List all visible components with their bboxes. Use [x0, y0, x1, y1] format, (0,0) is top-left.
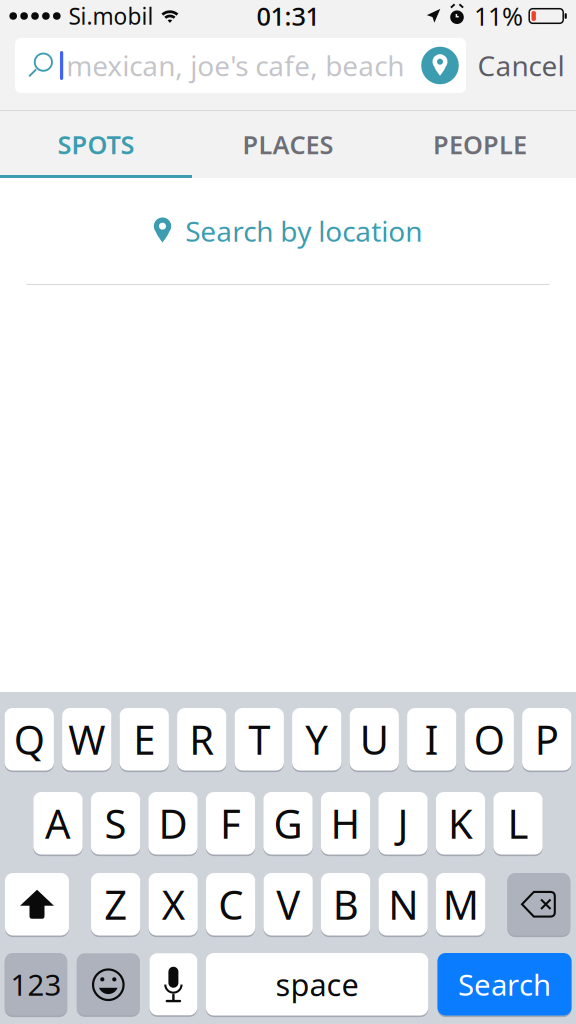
button[interactable]: R [177, 708, 226, 770]
staticText: V [276, 878, 300, 931]
staticText: mexican, joe's cafe, beach [66, 47, 404, 84]
staticText: 11% [474, 0, 523, 33]
button[interactable]: P [522, 708, 571, 770]
button[interactable]: PLACES [192, 111, 384, 178]
button[interactable]: Q [5, 708, 54, 770]
button[interactable]: U [350, 708, 399, 770]
button[interactable]: SPOTS [0, 111, 192, 178]
staticText: 01:31 [256, 0, 319, 33]
button[interactable]: Search nearby [414, 38, 466, 93]
button[interactable]: T [235, 708, 284, 770]
staticText: N [388, 878, 418, 931]
staticText: X [162, 878, 185, 931]
button[interactable]: A [33, 792, 83, 854]
staticText: I [425, 713, 439, 766]
button[interactable]: Cancel [466, 38, 576, 93]
staticText: C [218, 878, 243, 931]
button[interactable]: W [62, 708, 111, 770]
staticText: 123 [10, 965, 61, 1004]
button[interactable]: L [493, 792, 543, 854]
button[interactable]: C [206, 873, 255, 935]
staticText: J [397, 797, 408, 850]
staticText: B [333, 878, 359, 931]
staticText: Cancel [477, 47, 564, 84]
button[interactable]: G [263, 792, 313, 854]
staticText: F [220, 797, 241, 850]
staticText: M [443, 878, 479, 931]
button[interactable]: I [407, 708, 456, 770]
button[interactable]: F [206, 792, 255, 854]
staticText: Si.mobil [68, 1, 153, 31]
button[interactable]: S [91, 792, 140, 854]
button[interactable]: K [436, 792, 485, 854]
button[interactable]: X [148, 873, 198, 935]
button[interactable]: Emoji [77, 953, 140, 1015]
staticText: W [68, 713, 105, 766]
staticText: SPOTS [57, 128, 134, 161]
button[interactable]: Delete [507, 873, 570, 935]
button[interactable]: Y [292, 708, 341, 770]
button[interactable]: O [465, 708, 514, 770]
button[interactable]: V [263, 873, 313, 935]
button[interactable]: Search by location [0, 178, 576, 284]
staticText: A [45, 797, 71, 850]
staticText: P [535, 713, 559, 766]
staticText: Y [305, 713, 328, 766]
staticText: R [189, 713, 214, 766]
staticText: Q [14, 713, 45, 766]
staticText: PEOPLE [433, 128, 527, 161]
staticText: Search [458, 965, 551, 1004]
button[interactable]: Shift [5, 873, 69, 935]
staticText: space [276, 964, 359, 1005]
button[interactable]: Dictate [149, 953, 197, 1015]
button[interactable]: E [120, 708, 169, 770]
staticText: E [133, 713, 155, 766]
button[interactable]: M [436, 873, 485, 935]
staticText: Search by location [185, 212, 422, 250]
staticText: L [507, 797, 528, 850]
staticText: S [104, 797, 126, 850]
button[interactable]: Z [91, 873, 140, 935]
button[interactable]: 123 [5, 953, 67, 1015]
staticText: K [448, 797, 473, 850]
button[interactable]: H [321, 792, 370, 854]
button[interactable]: PEOPLE [384, 111, 576, 178]
button[interactable]: Search [437, 953, 571, 1015]
staticText: D [158, 797, 187, 850]
staticText: Z [104, 878, 127, 931]
staticText: G [273, 797, 302, 850]
staticText: PLACES [242, 128, 333, 161]
button[interactable]: D [148, 792, 198, 854]
staticText: T [248, 713, 270, 766]
button[interactable]: N [378, 873, 428, 935]
button[interactable]: J [378, 792, 428, 854]
staticText: H [330, 797, 360, 850]
button[interactable]: space [206, 953, 428, 1015]
staticText: O [474, 713, 505, 766]
staticText: U [360, 713, 389, 766]
button[interactable]: B [321, 873, 370, 935]
